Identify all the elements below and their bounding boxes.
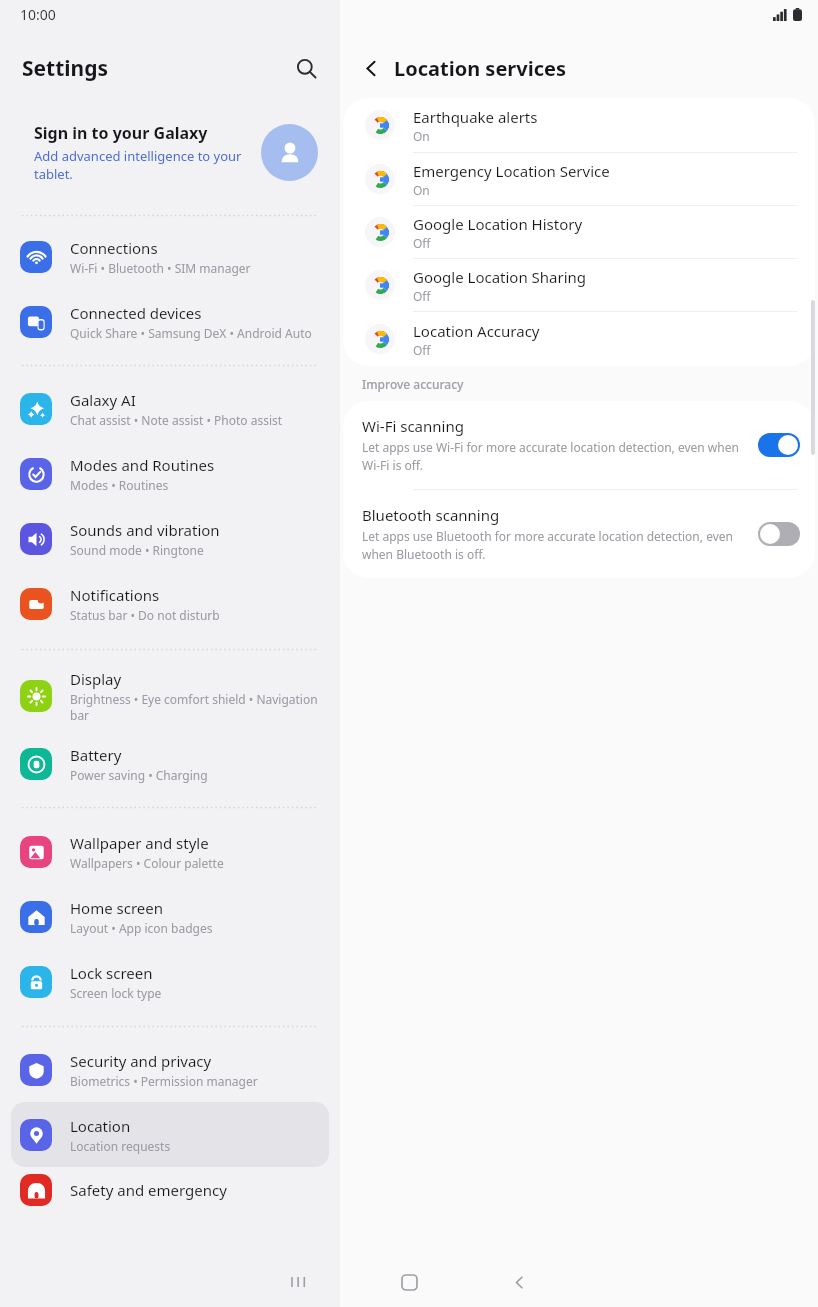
button[interactable]: Modes and Routines — [11, 441, 329, 506]
button[interactable]: Connections — [11, 224, 329, 289]
staticText: Notifications — [70, 585, 160, 605]
staticText: 10:00 — [20, 5, 56, 24]
staticText: Layout • App icon badges — [70, 920, 213, 936]
button[interactable]: Wi-Fi scanning — [343, 401, 815, 489]
button[interactable]: Battery — [11, 731, 329, 796]
staticText: Biometrics • Permission manager — [70, 1073, 258, 1089]
button[interactable]: Search — [286, 48, 326, 88]
staticText: Off — [413, 288, 431, 304]
staticText: Google Location History — [413, 214, 583, 234]
staticText: Off — [413, 342, 431, 358]
button[interactable]: Galaxy AI — [11, 376, 329, 441]
staticText: Screen lock type — [70, 985, 162, 1001]
staticText: Connections — [70, 238, 158, 258]
button[interactable]: Home screen — [11, 884, 329, 949]
staticText: Off — [413, 235, 431, 251]
staticText: Safety and emergency — [70, 1180, 227, 1200]
staticText: Location requests — [70, 1138, 171, 1154]
button[interactable]: Bluetooth scanning — [343, 490, 815, 578]
button[interactable]: Emergency Location Service — [343, 153, 815, 205]
button[interactable]: Back — [464, 1257, 574, 1307]
staticText: Chat assist • Note assist • Photo assist — [70, 412, 283, 428]
button[interactable]: Location Accuracy — [343, 312, 815, 366]
staticText: Wallpaper and style — [70, 833, 209, 853]
button[interactable]: Google Location History — [343, 206, 815, 258]
staticText: Sign in to your Galaxy — [34, 122, 208, 144]
staticText: Home screen — [70, 898, 164, 918]
staticText: Wi-Fi scanning — [362, 416, 464, 436]
button[interactable]: Google Location Sharing — [343, 259, 815, 311]
staticText: Let apps use Wi-Fi for more accurate loc… — [362, 439, 744, 474]
button[interactable]: Wi-Fi scanning on — [758, 433, 800, 457]
staticText: Location — [70, 1116, 131, 1136]
staticText: Location services — [394, 55, 566, 82]
staticText: Add advanced intelligence to your tablet… — [34, 147, 251, 183]
button[interactable]: Bluetooth scanning off — [758, 522, 800, 546]
button[interactable]: Earthquake alerts — [343, 98, 815, 152]
button[interactable]: Display — [11, 661, 329, 731]
staticText: Bluetooth scanning — [362, 505, 500, 525]
staticText: Security and privacy — [70, 1051, 212, 1071]
staticText: Status bar • Do not disturb — [70, 607, 220, 623]
staticText: On — [413, 128, 430, 144]
staticText: Let apps use Bluetooth for more accurate… — [362, 528, 744, 563]
staticText: Earthquake alerts — [413, 107, 538, 127]
staticText: Settings — [22, 54, 109, 83]
staticText: Sound mode • Ringtone — [70, 542, 204, 558]
staticText: Emergency Location Service — [413, 161, 610, 181]
button[interactable]: Notifications — [11, 571, 329, 636]
button[interactable]: Sign in to your Galaxy — [0, 110, 340, 194]
staticText: On — [413, 182, 430, 198]
button[interactable]: Wallpaper and style — [11, 819, 329, 884]
staticText: Google Location Sharing — [413, 267, 587, 287]
staticText: Improve accuracy — [362, 376, 464, 392]
staticText: Sounds and vibration — [70, 520, 220, 540]
staticText: Galaxy AI — [70, 390, 136, 410]
staticText: Quick Share • Samsung DeX • Android Auto — [70, 325, 312, 341]
staticText: Battery — [70, 745, 122, 765]
button[interactable]: Lock screen — [11, 949, 329, 1014]
button[interactable]: Sounds and vibration — [11, 506, 329, 571]
staticText: Wallpapers • Colour palette — [70, 855, 224, 871]
staticText: Power saving • Charging — [70, 767, 208, 783]
button[interactable]: Security and privacy — [11, 1037, 329, 1102]
staticText: Modes and Routines — [70, 455, 215, 475]
staticText: Brightness • Eye comfort shield • Naviga… — [70, 691, 320, 724]
button[interactable]: Home — [354, 1257, 464, 1307]
staticText: Location Accuracy — [413, 321, 540, 341]
staticText: Wi-Fi • Bluetooth • SIM manager — [70, 260, 251, 276]
staticText: Lock screen — [70, 963, 153, 983]
staticText: Modes • Routines — [70, 477, 169, 493]
button[interactable]: Recent apps — [244, 1257, 354, 1307]
button[interactable]: Safety and emergency — [11, 1167, 329, 1213]
button[interactable]: Connected devices — [11, 289, 329, 354]
staticText: Connected devices — [70, 303, 202, 323]
button[interactable]: Location — [11, 1102, 329, 1167]
button[interactable]: Navigate up — [352, 49, 390, 87]
staticText: Display — [70, 669, 122, 689]
